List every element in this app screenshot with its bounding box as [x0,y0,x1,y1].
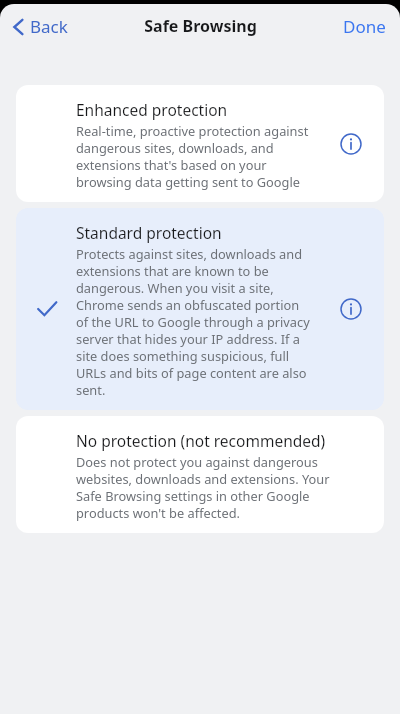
button[interactable]: More information [338,296,364,322]
staticText: sent. [76,381,106,398]
staticText: Real-time, proactive protection against [76,122,309,139]
staticText: URLs and bits of page content are also [76,364,307,381]
staticText: websites, downloads and extensions. Your [76,470,330,487]
staticText: Protects against sites, downloads and [76,245,303,262]
staticText: Back [30,15,68,38]
staticText: extensions that are known to be [76,262,269,279]
staticText: extensions that's based on your [76,156,267,173]
staticText: Safe Browsing settings in other Google [76,487,310,504]
staticText: products won't be affected. [76,504,240,521]
button[interactable]: Enhanced protection [16,85,384,202]
staticText: Done [343,15,386,38]
staticText: Standard protection [76,222,222,243]
button[interactable]: No protection (not recommended) [16,416,384,533]
staticText: server that hides your IP address. If a [76,330,300,347]
staticText: Chrome sends an obfuscated portion [76,296,300,313]
staticText: Safe Browsing [144,15,257,37]
staticText: browsing data getting sent to Google [76,173,300,190]
staticText: Enhanced protection [76,99,228,120]
button[interactable]: Done [337,11,392,42]
staticText: dangerous sites, downloads, and [76,139,274,156]
button[interactable]: Back [6,11,74,42]
staticText: site does something suspicious, full [76,347,290,364]
staticText: Does not protect you against dangerous [76,453,318,470]
button[interactable]: Standard protection [16,208,384,410]
button[interactable]: More information [338,131,364,157]
staticText: of the URL to Google through a privacy [76,313,310,330]
staticText: dangerous. When you visit a site, [76,279,274,296]
staticText: No protection (not recommended) [76,430,326,451]
